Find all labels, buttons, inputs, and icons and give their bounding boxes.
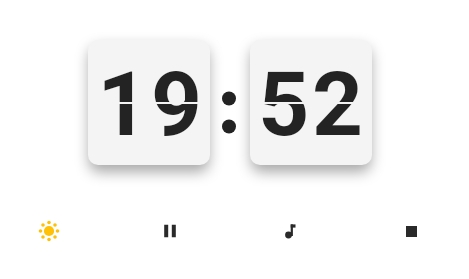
button[interactable]: 19 — [88, 40, 210, 165]
button[interactable]: Pause — [148, 209, 192, 253]
staticText: 19 — [97, 52, 205, 156]
button[interactable]: Stop — [389, 209, 433, 253]
button[interactable]: Brightness — [27, 209, 71, 253]
staticText: 52 — [258, 52, 366, 156]
button[interactable]: 52 — [250, 40, 372, 165]
button[interactable]: Music — [268, 209, 312, 253]
